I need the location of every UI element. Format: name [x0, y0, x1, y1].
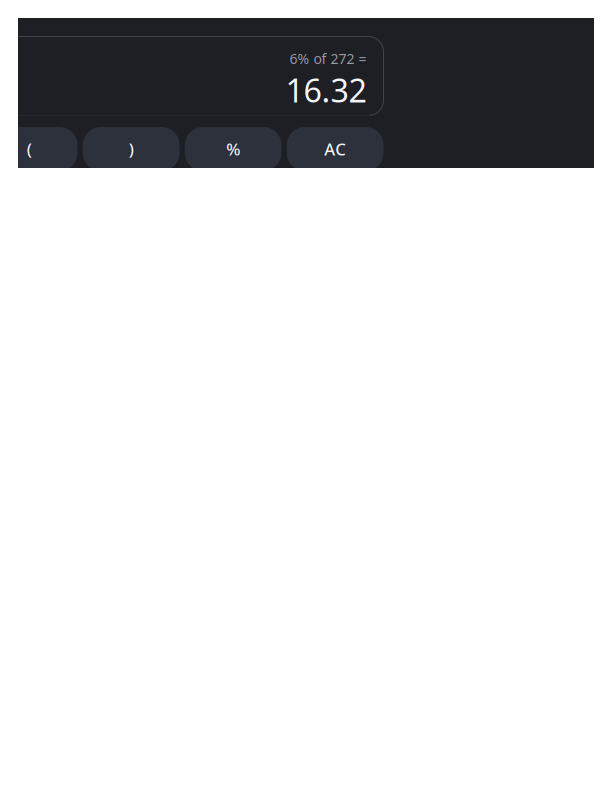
button[interactable]: (: [0, 127, 77, 171]
staticText: ): [129, 138, 134, 160]
staticText: AC: [324, 138, 346, 160]
staticText: 16.32: [285, 68, 366, 112]
staticText: %: [226, 138, 240, 160]
staticText: (: [27, 138, 32, 160]
button[interactable]: AC: [287, 127, 383, 171]
button[interactable]: %: [185, 127, 281, 171]
staticText: 6% of 272 =: [289, 49, 366, 68]
button[interactable]: ): [83, 127, 179, 171]
